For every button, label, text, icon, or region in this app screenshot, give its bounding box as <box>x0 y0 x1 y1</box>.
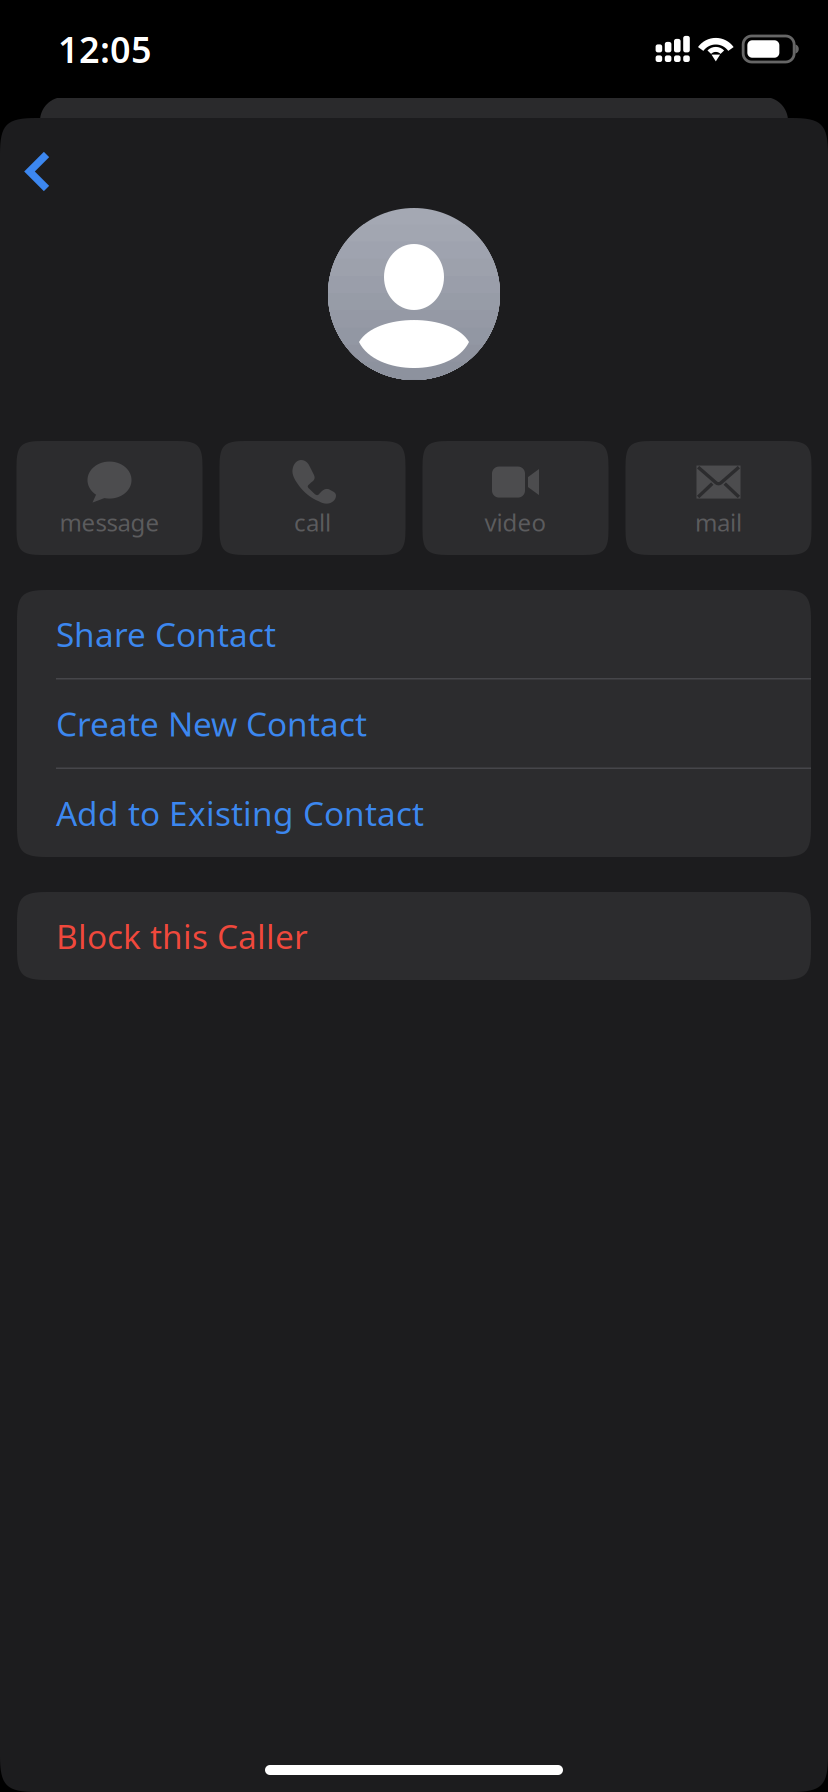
staticText: mail <box>695 506 742 538</box>
staticText: message <box>59 506 159 538</box>
staticText: Share Contact <box>56 612 276 656</box>
button[interactable]: message <box>16 441 202 555</box>
button[interactable]: Back <box>0 118 85 206</box>
staticText: Add to Existing Contact <box>56 791 424 835</box>
staticText: Block this Caller <box>56 914 308 958</box>
button[interactable]: video <box>422 441 608 555</box>
button[interactable]: Add to Existing Contact <box>17 769 811 857</box>
staticText: video <box>484 506 546 538</box>
staticText: 12:05 <box>58 25 152 73</box>
button[interactable]: mail <box>625 441 811 555</box>
staticText: Create New Contact <box>56 701 367 746</box>
button[interactable]: Share Contact <box>17 590 811 678</box>
button[interactable]: Block this Caller <box>17 892 811 980</box>
button[interactable]: Create New Contact <box>17 679 811 767</box>
button[interactable]: call <box>219 441 405 555</box>
staticText: call <box>294 506 331 538</box>
